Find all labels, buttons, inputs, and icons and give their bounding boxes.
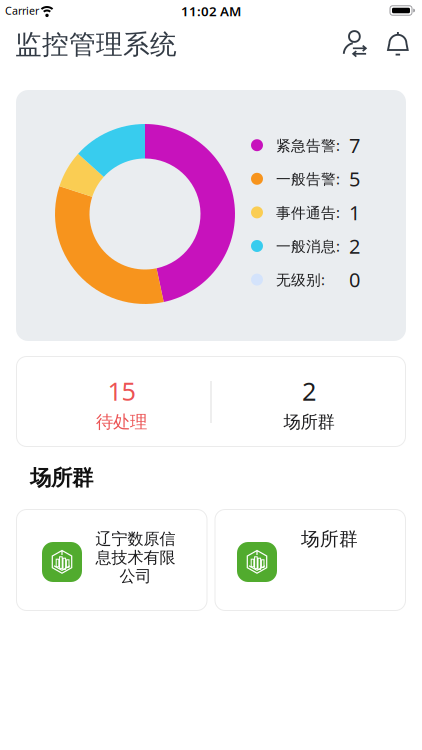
staticText: 11:02 AM: [181, 2, 241, 20]
staticText: 息技术有限: [95, 548, 175, 567]
staticText: 监控管理系统: [15, 28, 177, 61]
staticText: 2: [349, 233, 360, 259]
staticText: 1: [349, 199, 360, 226]
staticText: 公司: [119, 566, 151, 586]
staticText: 15: [107, 374, 135, 408]
staticText: 2: [302, 374, 316, 408]
button[interactable]: Notifications: [380, 25, 416, 61]
button[interactable]: 2: [219, 359, 399, 443]
staticText: 0: [349, 266, 360, 293]
staticText: 5: [349, 165, 360, 192]
button[interactable]: 辽宁数原信: [16, 509, 207, 611]
staticText: 场所群: [301, 527, 358, 550]
staticText: 一般消息:: [276, 236, 340, 256]
staticText: Carrier: [5, 3, 39, 18]
button[interactable]: 15: [31, 359, 211, 443]
staticText: 事件通告:: [276, 203, 340, 222]
staticText: 无级别:: [276, 270, 325, 289]
staticText: 待处理: [96, 411, 147, 433]
button[interactable]: Switch account: [335, 25, 371, 61]
staticText: 场所群: [283, 411, 334, 433]
staticText: 7: [349, 132, 360, 158]
staticText: 紧急告警:: [276, 135, 340, 155]
staticText: 场所群: [30, 465, 93, 491]
staticText: 一般告警:: [276, 169, 340, 189]
button[interactable]: 场所群: [214, 509, 406, 611]
staticText: 辽宁数原信: [95, 529, 175, 549]
